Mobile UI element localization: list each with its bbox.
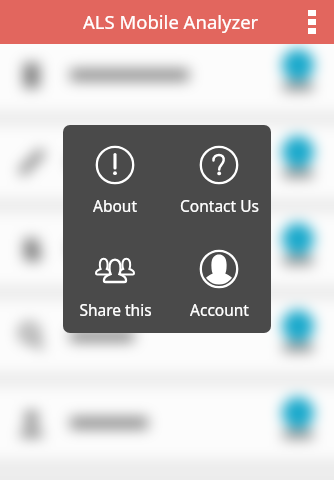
button[interactable]: About <box>63 125 167 229</box>
button[interactable]: Contact Us <box>167 125 271 229</box>
button[interactable] <box>0 126 334 198</box>
button[interactable]: More options <box>308 10 316 34</box>
button[interactable]: Share this <box>63 229 167 333</box>
button[interactable] <box>0 300 334 372</box>
staticText: Contact Us <box>180 195 259 216</box>
button[interactable] <box>0 39 334 111</box>
staticText: ALS Mobile Analyzer <box>83 9 259 34</box>
button[interactable]: Account <box>167 229 271 333</box>
staticText: About <box>93 195 137 216</box>
staticText: Share this <box>79 299 152 320</box>
staticText: Account <box>190 299 249 320</box>
button[interactable] <box>0 213 334 285</box>
button[interactable] <box>0 387 334 459</box>
